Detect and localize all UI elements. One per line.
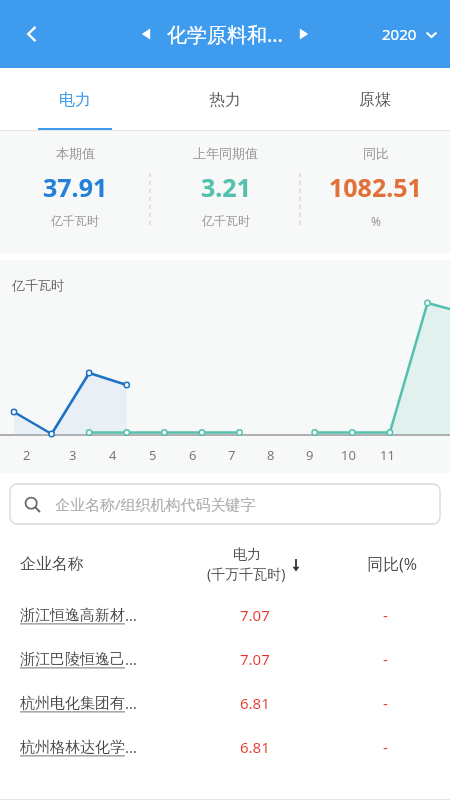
staticText: 浙江巴陵恒逸己 (20, 650, 125, 669)
staticText: 亿千瓦时 (202, 213, 250, 228)
staticText: 10 (341, 446, 356, 464)
staticText: 亿千瓦时 (51, 213, 99, 228)
staticText: 37.91 (43, 170, 108, 204)
button[interactable]: 热力 (150, 68, 300, 131)
staticText: 浙江恒逸高新材 (20, 606, 125, 625)
staticText: 同比(% (367, 553, 418, 575)
staticText: 7 (228, 446, 236, 464)
staticText: 电力 (59, 90, 91, 110)
button[interactable]: 电力 (0, 68, 150, 131)
button[interactable]: Next industry (289, 19, 319, 49)
button[interactable]: 2020 (382, 24, 438, 44)
button[interactable]: 浙江恒逸高新材 (0, 593, 450, 637)
button[interactable]: Sort descending (289, 558, 303, 572)
staticText: 上年同期值 (193, 145, 258, 161)
staticText: … (125, 693, 137, 713)
staticText: 2020 (382, 24, 417, 44)
staticText: - (383, 605, 388, 625)
staticText: 6.81 (240, 737, 270, 757)
staticText: 5 (149, 446, 157, 464)
staticText: 电力 (233, 546, 261, 564)
staticText: 热力 (209, 90, 241, 110)
button[interactable]: 企业名称/组织机构代码关键字 (10, 484, 440, 524)
staticText: - (383, 693, 388, 713)
button[interactable]: 杭州电化集团有 (0, 681, 450, 725)
staticText: 4 (109, 446, 117, 464)
staticText: 本期值 (56, 145, 95, 161)
staticText: 6 (189, 446, 197, 464)
button[interactable]: Previous industry (131, 19, 161, 49)
staticText: (千万千瓦时) (207, 564, 286, 583)
staticText: 7.07 (240, 649, 270, 669)
button[interactable]: 上年同期值 (151, 145, 300, 228)
staticText: % (371, 213, 381, 229)
staticText: 亿千瓦时 (12, 277, 64, 293)
staticText: 2 (23, 446, 31, 464)
staticText: … (125, 605, 137, 625)
staticText: 杭州格林达化学 (20, 738, 125, 757)
staticText: 杭州电化集团有 (20, 694, 125, 713)
staticText: … (125, 737, 137, 757)
staticText: 9 (306, 446, 314, 464)
staticText: … (125, 649, 137, 669)
staticText: - (383, 737, 388, 757)
staticText: 企业名称 (20, 554, 84, 574)
button[interactable]: 化学原料和… (167, 21, 283, 48)
staticText: 同比 (363, 145, 389, 161)
button[interactable]: 原煤 (300, 68, 450, 131)
staticText: 原煤 (359, 90, 391, 110)
staticText: 1082.51 (329, 170, 422, 204)
staticText: 11 (380, 446, 395, 464)
staticText: 3.21 (201, 170, 251, 204)
button[interactable]: 浙江巴陵恒逸己 (0, 637, 450, 681)
button[interactable]: 同比 (301, 145, 450, 229)
button[interactable]: 杭州格林达化学 (0, 725, 450, 769)
staticText: 3 (69, 446, 77, 464)
staticText: 7.07 (240, 605, 270, 625)
staticText: 6.81 (240, 693, 270, 713)
staticText: 8 (267, 446, 275, 464)
button[interactable]: 本期值 (0, 145, 150, 228)
staticText: - (383, 649, 388, 669)
button[interactable]: Back (8, 10, 56, 58)
staticText: 企业名称/组织机构代码关键字 (55, 494, 256, 514)
